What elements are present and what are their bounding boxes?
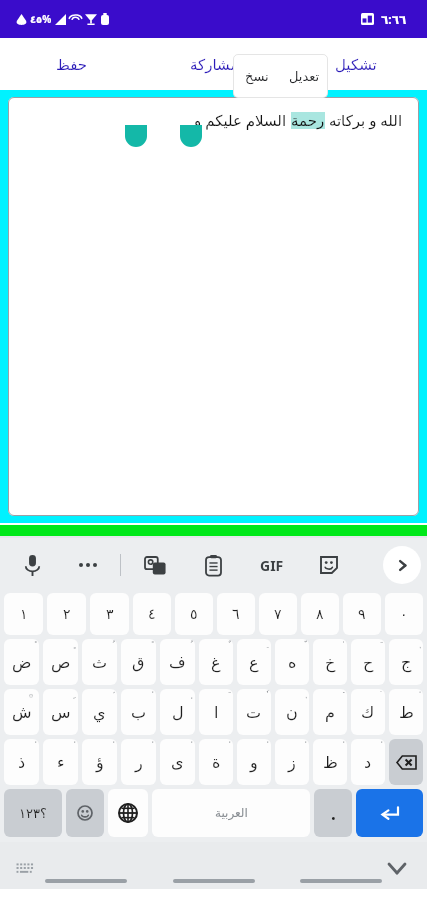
button[interactable]: . [314, 789, 352, 837]
button[interactable]: ٥ [175, 593, 213, 635]
button[interactable]: ف [160, 639, 195, 685]
staticText: ح [363, 653, 374, 672]
button[interactable]: ك [351, 689, 385, 735]
button[interactable]: ج [389, 639, 423, 685]
button[interactable]: ز [275, 739, 309, 785]
button[interactable]: ٩ [343, 593, 381, 635]
button[interactable]: مشاركة [143, 38, 285, 90]
staticText: GIF [260, 556, 284, 575]
staticText: و [250, 753, 258, 772]
staticText: ء [57, 753, 65, 772]
button[interactable]: ة [199, 739, 233, 785]
staticText: ز [288, 753, 296, 772]
staticText: ت [246, 703, 262, 722]
staticText: ٦ [232, 606, 240, 622]
staticText: ص [51, 653, 71, 672]
staticText: تعديل [289, 69, 320, 84]
button[interactable]: Backspace [389, 739, 423, 785]
button[interactable]: ض [4, 639, 39, 685]
button[interactable]: ٦ [217, 593, 255, 635]
staticText: د [364, 753, 372, 772]
staticText: مشاركة [190, 56, 239, 73]
button[interactable]: ص [43, 639, 78, 685]
button[interactable]: ب [121, 689, 156, 735]
button[interactable]: ا [199, 689, 233, 735]
staticText: ٠ [400, 606, 408, 622]
button[interactable]: ؟١٢٣ [4, 789, 62, 837]
button[interactable]: ؤ [82, 739, 117, 785]
button[interactable]: س [43, 689, 78, 735]
button[interactable]: Close keyboard [381, 852, 413, 884]
button[interactable]: خ [313, 639, 347, 685]
staticText: ك [361, 703, 375, 722]
staticText: ة [212, 753, 221, 772]
button[interactable]: ٢ [47, 593, 86, 635]
staticText: ٥ [190, 606, 198, 622]
button[interactable]: د [351, 739, 385, 785]
staticText: ج [401, 653, 412, 672]
button[interactable]: ٠ [385, 593, 423, 635]
button[interactable]: Enter [356, 789, 423, 837]
button[interactable]: ت [237, 689, 271, 735]
button[interactable]: ن [275, 689, 309, 735]
button[interactable]: ٣ [90, 593, 129, 635]
staticText: ر [135, 753, 143, 772]
staticText: ط [399, 703, 414, 722]
button[interactable]: ر [121, 739, 156, 785]
button[interactable]: ظ [313, 739, 347, 785]
button[interactable]: Stickers [311, 547, 347, 583]
button[interactable]: ه [275, 639, 309, 685]
button[interactable]: ع [237, 639, 271, 685]
button[interactable]: ث [82, 639, 117, 685]
staticText: ف [169, 653, 186, 672]
button[interactable]: و [237, 739, 271, 785]
staticText: ي [93, 703, 106, 722]
button[interactable]: حفظ [0, 38, 143, 90]
staticText: ع [249, 653, 259, 672]
button[interactable]: تعديل [280, 54, 328, 98]
button[interactable]: Translate [137, 547, 173, 583]
staticText: . [331, 802, 336, 825]
button[interactable]: ٤ [133, 593, 171, 635]
staticText: ذ [18, 753, 26, 772]
button[interactable]: ء [43, 739, 78, 785]
button[interactable]: GIF [251, 544, 293, 586]
button[interactable]: ١ [4, 593, 43, 635]
button[interactable]: تشكيل [285, 38, 427, 90]
staticText: ا [214, 703, 219, 722]
button[interactable]: ق [121, 639, 156, 685]
button[interactable]: More options [70, 547, 106, 583]
button[interactable]: ح [351, 639, 385, 685]
button[interactable]: ط [389, 689, 423, 735]
staticText: خ [325, 653, 336, 672]
staticText: ق [132, 653, 145, 672]
button[interactable]: Hide keyboard [10, 854, 38, 882]
button[interactable]: Emoji [66, 789, 104, 837]
staticText: حفظ [56, 56, 88, 73]
staticText: ش [12, 703, 32, 722]
staticText: ب [131, 703, 147, 722]
button[interactable]: ذ [4, 739, 39, 785]
button[interactable]: م [313, 689, 347, 735]
staticText: ه [288, 653, 297, 672]
button[interactable]: Clipboard [195, 547, 231, 583]
button[interactable]: ي [82, 689, 117, 735]
staticText: ى [171, 753, 184, 772]
button[interactable]: ٧ [259, 593, 297, 635]
button[interactable]: Voice input [14, 547, 50, 583]
staticText: ل [172, 703, 184, 722]
staticText: الله و بركاته [325, 110, 403, 130]
button[interactable]: ٨ [301, 593, 339, 635]
staticText: ٧ [274, 606, 282, 622]
button[interactable]: السلام عليكم و [8, 97, 419, 516]
button[interactable]: ل [160, 689, 195, 735]
button[interactable]: غ [199, 639, 233, 685]
button[interactable]: العربية [152, 789, 310, 837]
button[interactable]: نسخ [233, 54, 280, 98]
staticText: رحمة [291, 112, 325, 129]
button[interactable]: ش [4, 689, 39, 735]
button[interactable]: ى [160, 739, 195, 785]
button[interactable]: Expand toolbar [383, 546, 421, 584]
staticText: ٤٥% [30, 12, 52, 26]
button[interactable]: Change language [108, 789, 148, 837]
